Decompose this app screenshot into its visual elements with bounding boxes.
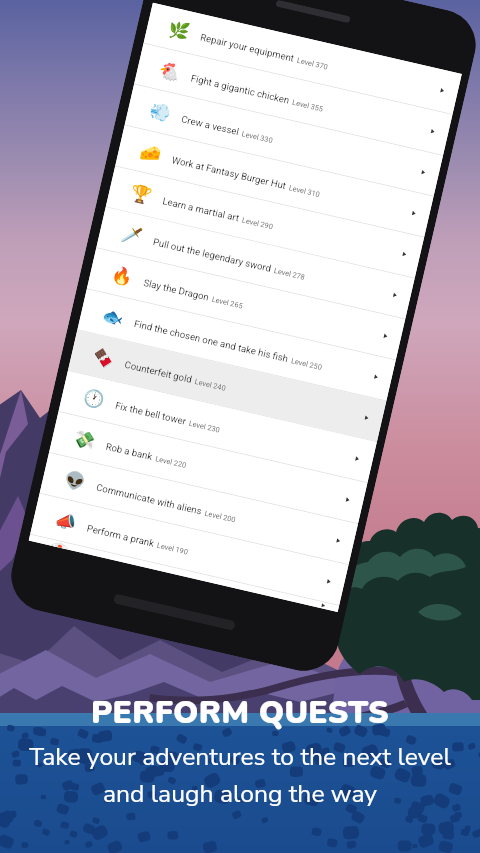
- staticText: Rob a bank Level 220: [104, 437, 189, 471]
- staticText: 💨: [147, 100, 171, 124]
- staticText: 💸: [72, 427, 96, 451]
- staticText: 🗡: [119, 223, 143, 247]
- staticText: Take your adventures to the next level a…: [29, 740, 451, 811]
- staticText: 🧀: [138, 141, 162, 165]
- button[interactable]: 🐔: [134, 44, 452, 155]
- staticText: Communicate with aliens Level 200: [95, 478, 238, 525]
- button[interactable]: 👽: [40, 453, 358, 564]
- staticText: 🐟: [100, 305, 124, 329]
- button[interactable]: 🎲: [29, 535, 339, 612]
- button[interactable]: 💨: [125, 85, 443, 196]
- staticText: 🎲: [49, 539, 70, 550]
- staticText: Find the chosen one and take his fish Le…: [133, 314, 325, 373]
- staticText: Win a bet Level 180: [81, 547, 156, 570]
- staticText: Fix the bell tower Level 230: [114, 396, 223, 436]
- staticText: 📣: [53, 509, 77, 533]
- staticText: 🌿: [166, 18, 190, 42]
- staticText: 👽: [62, 468, 86, 492]
- button[interactable]: 📣: [30, 494, 348, 605]
- button[interactable]: 🔥: [87, 248, 405, 360]
- staticText: 🐔: [157, 59, 181, 83]
- staticText: Counterfeit gold Level 240: [123, 355, 228, 394]
- staticText: Crew a vessel Level 330: [180, 109, 275, 146]
- staticText: 🍫: [91, 346, 115, 370]
- staticText: Pull out the legendary sword Level 278: [152, 232, 307, 283]
- button[interactable]: 🗡: [96, 207, 414, 319]
- button[interactable]: 🍫: [68, 330, 386, 441]
- button[interactable]: 🏆: [106, 166, 424, 278]
- button[interactable]: 🧀: [115, 125, 433, 237]
- staticText: Slay the Dragon Level 265: [142, 273, 245, 312]
- staticText: Perform a prank Level 190: [86, 519, 190, 558]
- staticText: PERFORM QUESTS: [91, 691, 389, 734]
- staticText: Learn a martial art Level 290: [161, 191, 276, 232]
- staticText: Work at Fantasy Burger Hut Level 310: [171, 150, 322, 200]
- button[interactable]: 🕐: [59, 371, 377, 482]
- staticText: 🕐: [81, 386, 105, 410]
- staticText: 🏆: [129, 182, 153, 206]
- button[interactable]: 💸: [49, 412, 367, 523]
- staticText: Fight a gigantic chicken Level 355: [190, 68, 326, 115]
- button[interactable]: 🌿: [144, 3, 462, 114]
- staticText: 🔥: [110, 264, 134, 288]
- staticText: Repair your equipment Level 370: [199, 27, 330, 73]
- button[interactable]: 🐟: [78, 289, 396, 400]
